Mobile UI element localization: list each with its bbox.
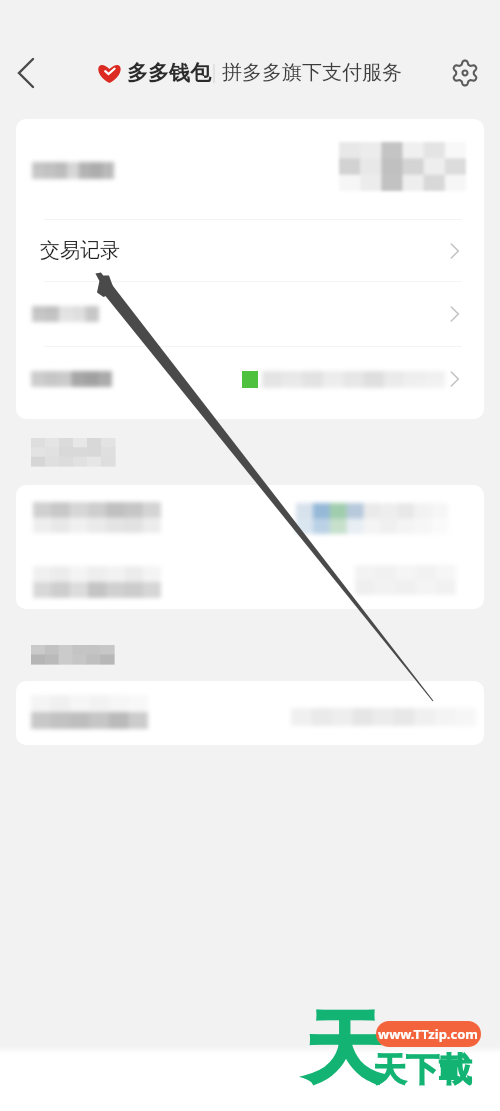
staticText: 拼多多旗下支付服务 [222, 60, 402, 85]
button[interactable]: Back [6, 53, 46, 93]
staticText: 交易记录 [40, 238, 120, 263]
button[interactable] [16, 485, 484, 547]
staticText: www.TTzip.com [378, 1025, 479, 1043]
button[interactable] [16, 547, 484, 609]
button[interactable] [16, 347, 484, 411]
button[interactable] [16, 282, 484, 346]
staticText: 天 [305, 1000, 383, 1098]
staticText: 多多钱包 [127, 60, 211, 86]
button[interactable]: 交易记录 [16, 220, 484, 281]
staticText: 天下載 [373, 1049, 472, 1091]
button[interactable] [16, 681, 484, 745]
button[interactable]: Settings [445, 53, 485, 93]
